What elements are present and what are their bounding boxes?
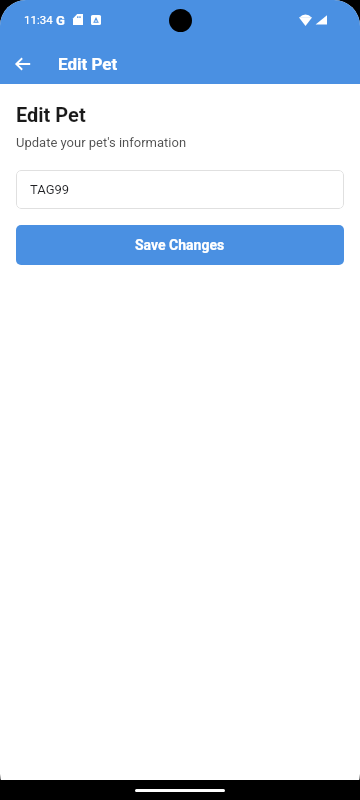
staticText: Edit Pet [16, 103, 86, 126]
staticText: TAG99 [30, 182, 70, 197]
button[interactable]: Back [0, 43, 45, 84]
staticText: G [56, 13, 65, 28]
staticText: Edit Pet [58, 54, 118, 74]
button[interactable]: TAG99 [16, 170, 344, 209]
staticText: Save Changes [135, 237, 225, 253]
button[interactable]: Save Changes [16, 225, 344, 265]
staticText: 11:34 [24, 13, 53, 26]
staticText: Update your pet's information [16, 135, 187, 150]
